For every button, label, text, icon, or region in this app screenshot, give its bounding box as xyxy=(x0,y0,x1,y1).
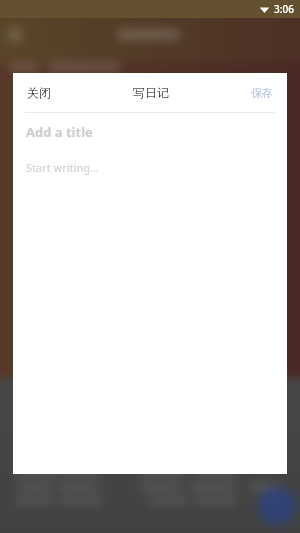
staticText: 写日记 xyxy=(133,85,169,100)
staticText: 保存 xyxy=(251,86,273,100)
staticText: 关闭 xyxy=(27,85,51,100)
staticText: Add a title xyxy=(26,123,93,141)
button[interactable]: 保存 xyxy=(241,80,283,106)
button[interactable]: Add a title xyxy=(13,113,287,151)
staticText: 3:06 xyxy=(274,2,294,16)
button[interactable]: 关闭 xyxy=(17,79,61,106)
button[interactable]: Add entry xyxy=(258,487,296,525)
staticText: Start writing... xyxy=(26,160,99,175)
